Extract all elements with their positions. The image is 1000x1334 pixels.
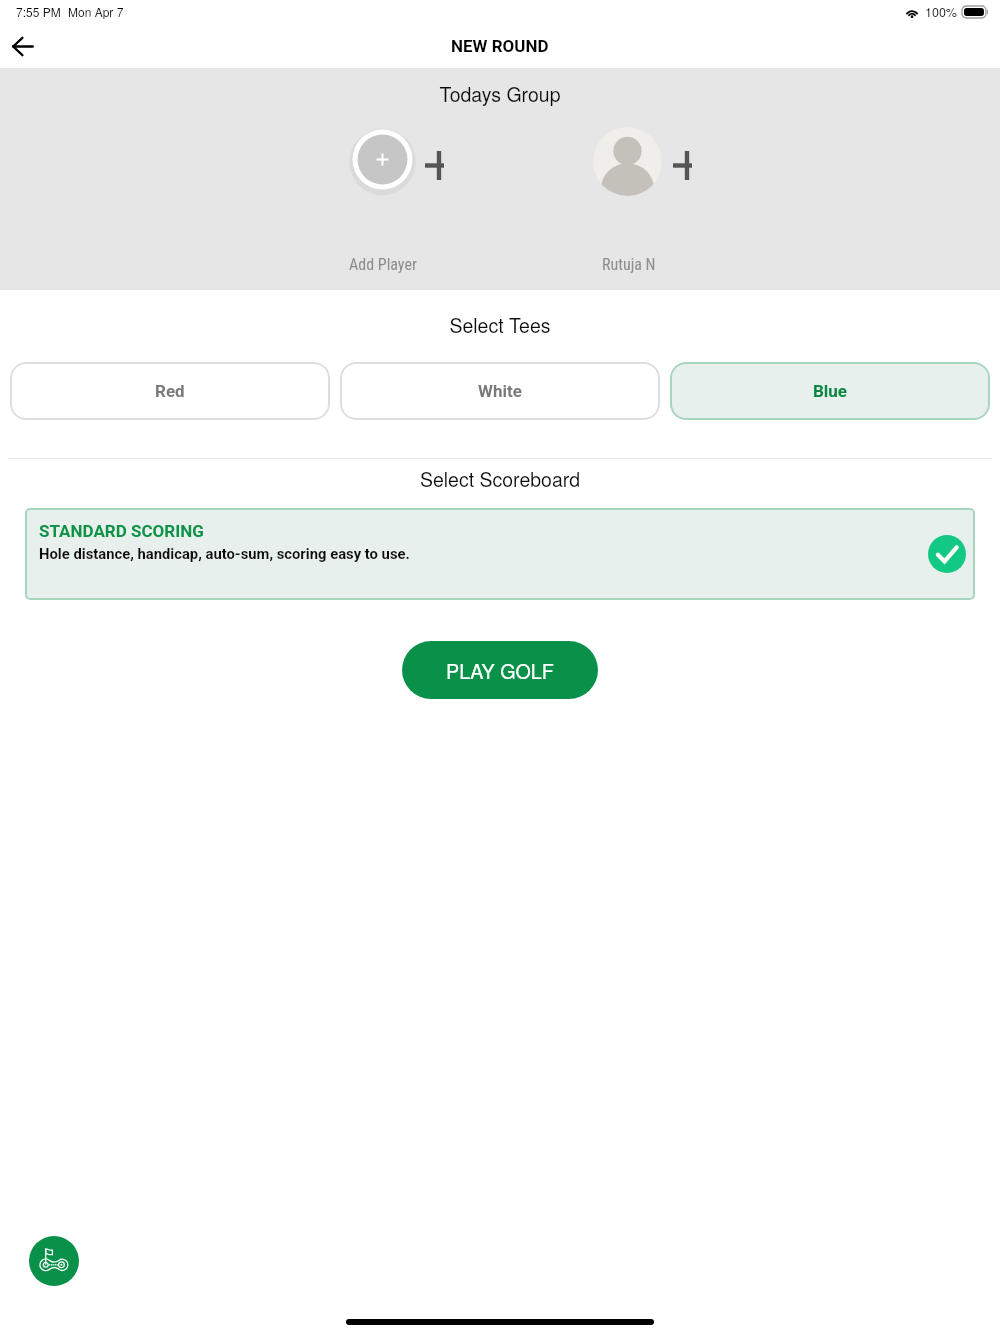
button[interactable]: Add a player: [673, 151, 693, 180]
staticText: 100%: [925, 3, 957, 21]
staticText: Todays Group: [0, 80, 1000, 108]
staticText: NEW ROUND: [451, 36, 549, 56]
button[interactable]: PLAY GOLF: [402, 641, 598, 699]
staticText: Select Tees: [0, 311, 1000, 339]
staticText: Select Scoreboard: [0, 465, 1000, 493]
staticText: Red: [155, 381, 185, 401]
staticText: Add Player: [349, 255, 417, 274]
staticText: Blue: [813, 381, 848, 401]
button[interactable]: Back: [4, 27, 42, 65]
button[interactable]: Blue: [670, 362, 990, 420]
staticText: Mon Apr 7: [68, 3, 124, 20]
button[interactable]: White: [340, 362, 660, 420]
staticText: STANDARD SCORING: [39, 521, 204, 541]
staticText: Hole distance, handicap, auto-sum, scori…: [39, 545, 410, 562]
button[interactable]: Red: [10, 362, 330, 420]
staticText: Rutuja N: [602, 255, 656, 274]
staticText: White: [478, 381, 522, 401]
button[interactable]: Add a player: [425, 151, 445, 180]
button[interactable]: Rutuja N: [580, 123, 673, 273]
staticText: 7:55 PM: [16, 3, 61, 20]
button[interactable]: STANDARD SCORING: [25, 508, 975, 600]
staticText: PLAY GOLF: [446, 656, 554, 684]
button[interactable]: Add Player: [336, 123, 429, 273]
button[interactable]: Golf course map: [29, 1236, 79, 1286]
